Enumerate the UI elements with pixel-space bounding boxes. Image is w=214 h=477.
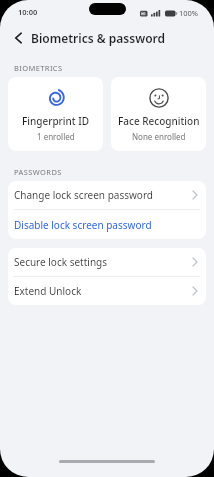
staticText: 10:00 [18,7,38,17]
staticText: Disable lock screen password [14,218,152,232]
staticText: None enrolled [132,131,186,142]
button[interactable]: Secure lock settings [8,248,206,276]
button[interactable] [14,32,23,44]
staticText: 100% [179,8,199,18]
staticText: PASSWORDS [14,167,62,177]
staticText: Fingerprint ID [22,114,90,128]
button[interactable]: Extend Unlock [8,277,206,305]
staticText: 1 enrolled [37,131,75,142]
button[interactable]: Face Recognition [111,77,206,151]
staticText: Secure lock settings [14,255,107,269]
staticText: BIOMETRICS [14,63,63,73]
button[interactable]: Change lock screen password [8,181,206,209]
button[interactable]: Fingerprint ID [8,77,103,151]
staticText: Change lock screen password [14,188,153,202]
staticText: Biometrics & password [31,30,166,46]
staticText: Face Recognition [118,114,200,128]
button[interactable]: Disable lock screen password [8,210,206,239]
staticText: Extend Unlock [14,284,82,298]
